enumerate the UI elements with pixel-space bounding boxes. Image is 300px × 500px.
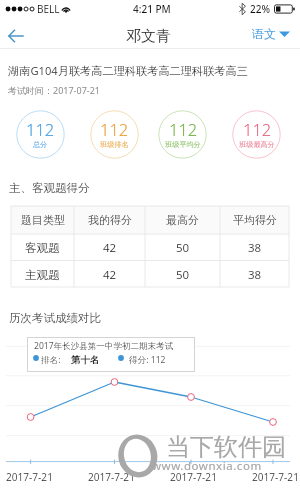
staticText: 得分: 112: [129, 354, 166, 366]
button[interactable]: 返回: [3, 23, 28, 48]
staticText: 50: [176, 267, 190, 283]
staticText: 排名:: [41, 354, 61, 366]
staticText: 我的得分: [88, 213, 132, 227]
staticText: 邓文青: [126, 27, 171, 46]
staticText: 38: [248, 240, 262, 256]
staticText: 主观题: [25, 268, 60, 282]
staticText: 2017年长沙县第一中学初二期末考试: [34, 340, 174, 352]
staticText: 最高分: [166, 213, 199, 227]
staticText: 4:21 PM: [133, 2, 171, 16]
button[interactable]: 语文: [252, 26, 290, 41]
staticText: 2017-7-21: [252, 470, 299, 484]
staticText: 历次考试成绩对比: [9, 311, 101, 325]
staticText: 平均得分: [233, 213, 277, 227]
staticText: 22%: [250, 2, 270, 16]
button[interactable]: 112: [232, 110, 281, 159]
staticText: 第十名: [71, 354, 100, 366]
staticText: 42: [103, 240, 117, 256]
staticText: 题目类型: [21, 213, 65, 227]
staticText: 主、客观题得分: [9, 181, 90, 195]
staticText: 总分: [33, 140, 48, 149]
staticText: www.downxia.com: [152, 458, 262, 474]
staticText: 语文: [252, 26, 276, 41]
staticText: 班级最高分: [239, 140, 275, 149]
button[interactable]: 112: [90, 110, 139, 159]
staticText: 112: [169, 118, 198, 140]
staticText: 客观题: [25, 241, 60, 255]
staticText: BELL: [37, 2, 60, 16]
staticText: 112: [26, 118, 55, 140]
staticText: 湖南G104月联考高二理科联考高二理科联考高三: [8, 63, 248, 78]
staticText: 当下软件园: [166, 432, 286, 462]
staticText: 班级平均分: [165, 140, 201, 149]
staticText: 考试时间：2017-07-21: [8, 84, 100, 96]
button[interactable]: 112: [158, 110, 207, 159]
staticText: 38: [248, 267, 262, 283]
staticText: 42: [103, 267, 117, 283]
staticText: 112: [243, 118, 272, 140]
staticText: 2017-7-21: [170, 470, 217, 484]
staticText: 班级排名: [100, 140, 129, 149]
staticText: 112: [100, 118, 129, 140]
staticText: 2017-7-21: [88, 470, 135, 484]
staticText: 50: [176, 240, 190, 256]
button[interactable]: 112: [16, 110, 65, 159]
staticText: 2017-7-21: [6, 470, 53, 484]
